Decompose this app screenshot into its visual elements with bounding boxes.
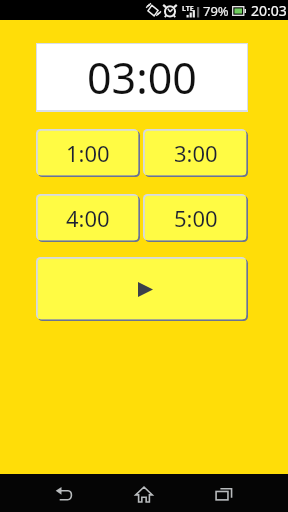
button[interactable]: 4:00 — [36, 194, 140, 242]
button[interactable]: Back — [24, 474, 104, 512]
button[interactable]: Recent apps — [184, 474, 264, 512]
staticText: 03:00 — [87, 48, 197, 107]
staticText: 79% — [203, 2, 229, 20]
button[interactable]: 03:00 — [36, 43, 248, 112]
staticText: 1:00 — [66, 138, 110, 168]
staticText: LTE — [182, 4, 194, 14]
staticText: 20:03 — [251, 1, 287, 20]
button[interactable]: 1:00 — [36, 129, 140, 177]
button[interactable]: Start timer — [36, 257, 248, 321]
staticText: 3:00 — [174, 138, 218, 168]
button[interactable]: 3:00 — [143, 129, 248, 177]
button[interactable]: 5:00 — [143, 194, 248, 242]
button[interactable]: Home — [104, 474, 184, 512]
staticText: 5:00 — [174, 203, 218, 233]
staticText: 4:00 — [66, 203, 110, 233]
